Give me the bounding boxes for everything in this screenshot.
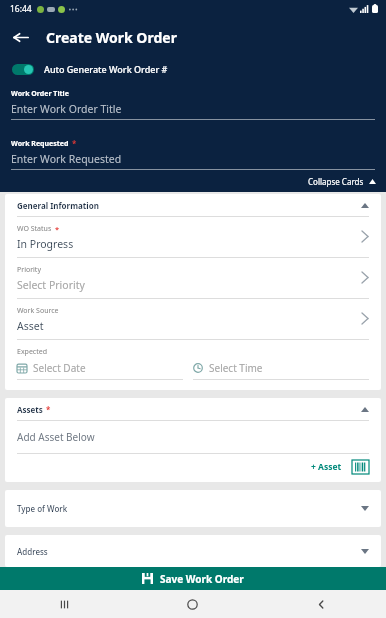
staticText: General Information <box>17 200 99 211</box>
staticText: Add Asset Below <box>17 430 95 444</box>
button[interactable]: WO Status <box>5 217 381 258</box>
staticText: + Asset <box>311 461 342 473</box>
button[interactable]: Type of Work <box>5 490 381 527</box>
button[interactable]: Priority <box>5 258 381 299</box>
button[interactable]: Select Time <box>193 361 369 380</box>
staticText: Type of Work <box>17 503 68 514</box>
staticText: Select Date <box>33 361 86 375</box>
staticText: Work Source <box>17 306 59 316</box>
staticText: * <box>46 404 51 415</box>
staticText: Select Time <box>209 361 263 375</box>
staticText: Expected <box>17 347 47 357</box>
staticText: In Progress <box>17 237 74 251</box>
button[interactable]: Back <box>257 590 386 618</box>
staticText: Collapse Cards <box>308 176 364 187</box>
staticText: Work Order Title <box>11 89 69 99</box>
button[interactable]: Back <box>0 17 40 57</box>
staticText: 16:44 <box>10 3 32 15</box>
staticText: Auto Generate Work Order # <box>44 63 168 75</box>
button[interactable]: Home <box>128 590 257 618</box>
button[interactable]: Select Date <box>17 361 193 380</box>
button[interactable]: Auto Generate Work Order # <box>0 57 386 81</box>
button[interactable]: Save Work Order <box>0 567 386 590</box>
button[interactable]: + Asset <box>307 459 346 475</box>
button[interactable]: Assets <box>5 398 381 420</box>
staticText: Select Priority <box>17 278 85 292</box>
staticText: Work Requested <box>11 139 69 149</box>
staticText: Enter Work Order Title <box>11 102 122 116</box>
button[interactable]: Recent apps <box>0 590 128 618</box>
button[interactable]: Address <box>5 535 381 567</box>
staticText: Create Work Order <box>46 28 177 47</box>
staticText: Address <box>17 546 48 557</box>
button[interactable]: Scan barcode <box>352 460 369 474</box>
button[interactable]: Collapse Cards <box>298 173 386 190</box>
staticText: * <box>72 138 77 149</box>
button[interactable]: General Information <box>5 194 381 216</box>
staticText: * <box>55 224 60 234</box>
staticText: Enter Work Requested <box>11 152 122 166</box>
button[interactable]: Work Source <box>5 299 381 340</box>
staticText: Priority <box>17 265 41 275</box>
staticText: WO Status <box>17 224 52 234</box>
staticText: Asset <box>17 319 44 333</box>
staticText: Assets <box>17 404 43 415</box>
staticText: Save Work Order <box>160 572 244 586</box>
